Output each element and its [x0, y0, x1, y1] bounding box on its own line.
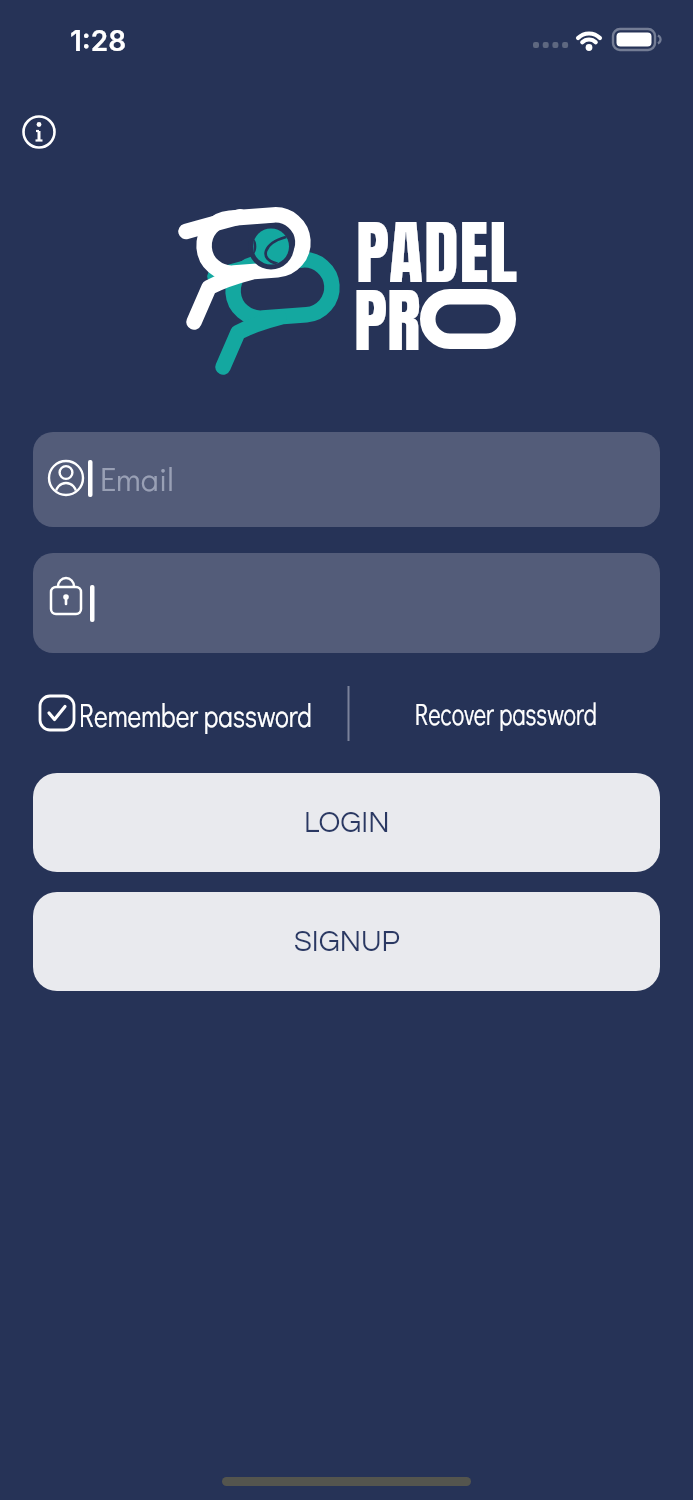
staticText: LOGIN [304, 808, 390, 838]
staticText: PR [354, 268, 421, 373]
button[interactable] [33, 688, 323, 738]
staticText: SIGNUP [294, 927, 400, 957]
button[interactable] [33, 432, 660, 527]
staticText: Recover password [415, 693, 597, 734]
button[interactable]: SIGNUP [33, 892, 660, 991]
button[interactable] [33, 553, 660, 653]
button[interactable] [20, 113, 58, 151]
button[interactable]: Recover password [376, 688, 636, 738]
button[interactable]: LOGIN [33, 773, 660, 872]
staticText: PADEL [356, 200, 519, 305]
staticText: 1:28 [70, 24, 127, 58]
staticText: Remember password [79, 692, 312, 735]
staticText: Email [100, 458, 174, 500]
